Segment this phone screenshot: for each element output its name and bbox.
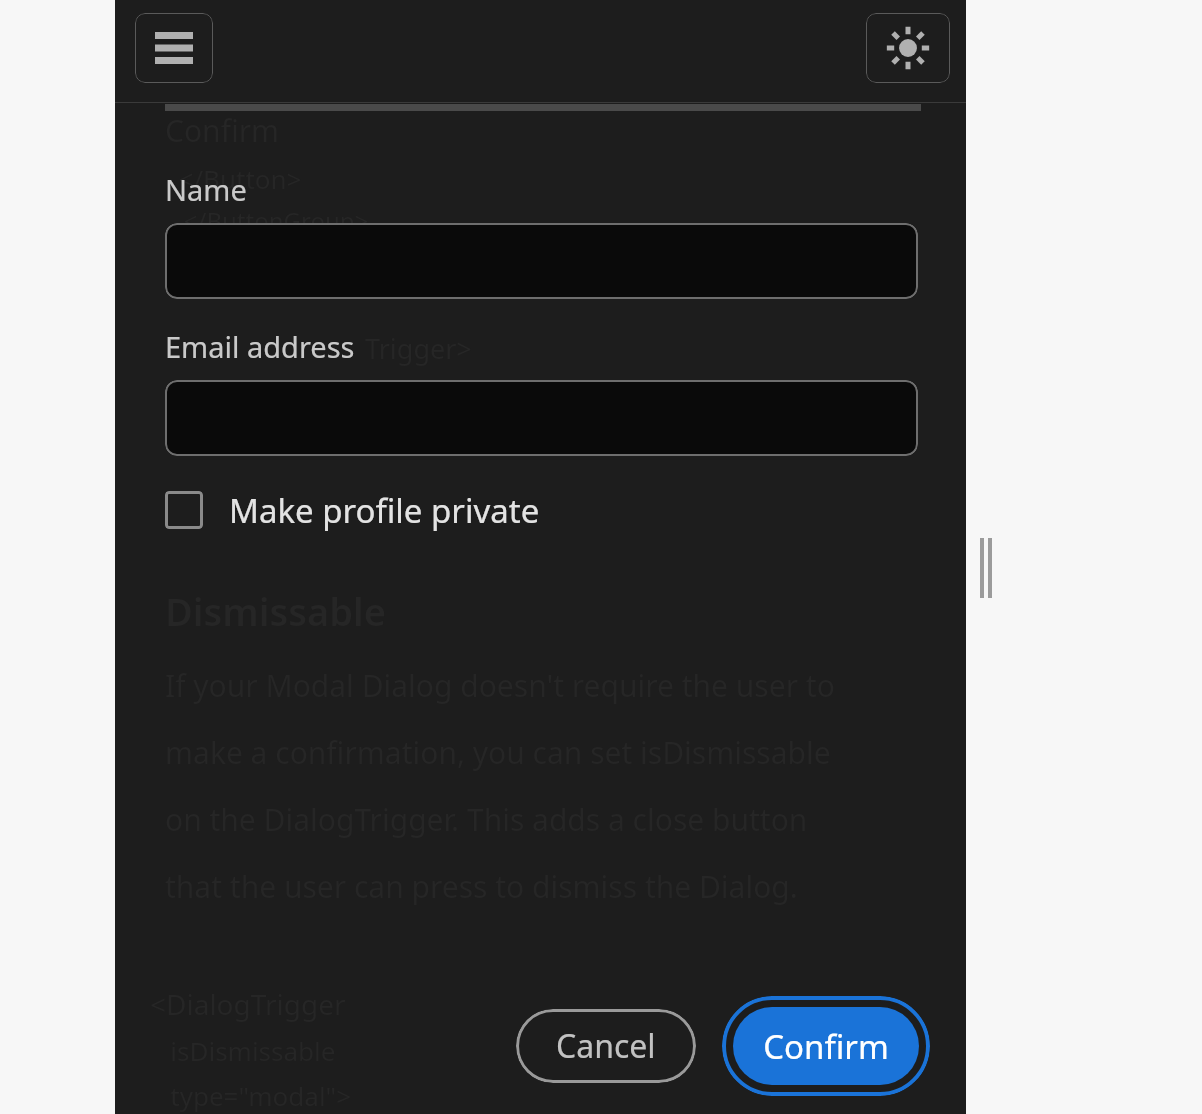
button[interactable]: Cancel xyxy=(516,1009,696,1083)
button[interactable] xyxy=(165,380,918,456)
button[interactable]: Make profile private xyxy=(165,484,540,536)
staticText: Confirm xyxy=(763,1024,889,1069)
button[interactable]: Toggle theme xyxy=(866,13,950,83)
button[interactable]: Resize panel xyxy=(972,523,1000,613)
staticText: </ButtonGroup> xyxy=(165,204,369,237)
staticText: </Button> xyxy=(165,161,302,196)
staticText: Cancel xyxy=(556,1024,656,1068)
button[interactable]: Menu xyxy=(135,13,213,83)
staticText: Dismissable xyxy=(165,585,387,637)
button[interactable] xyxy=(165,223,918,299)
staticText: Email address xyxy=(165,327,355,366)
staticText: Name xyxy=(165,170,247,209)
staticText: Confirm xyxy=(165,110,280,151)
button[interactable]: Confirm xyxy=(722,996,930,1096)
staticText: Make profile private xyxy=(229,488,540,533)
